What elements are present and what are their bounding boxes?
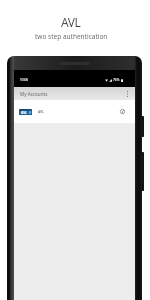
staticText: My Accounts [20, 91, 48, 97]
button[interactable]: More options [123, 90, 131, 98]
staticText: 76% [113, 78, 120, 82]
staticText: AVL [21, 110, 28, 114]
button[interactable]: Refresh code [120, 109, 125, 114]
staticText: AVL [61, 14, 81, 30]
staticText: two step authentication [35, 32, 108, 41]
button[interactable]: AVL [14, 100, 135, 123]
staticText: 10:06 [20, 78, 29, 82]
staticText: AVL [38, 109, 44, 114]
